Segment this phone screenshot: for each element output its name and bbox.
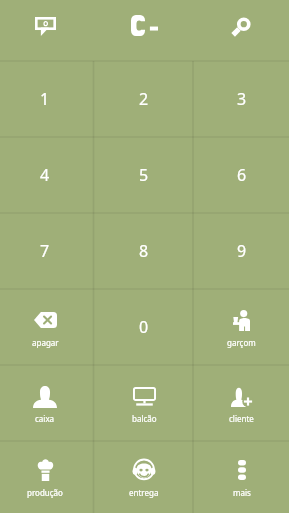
button[interactable]: apagar <box>0 289 94 365</box>
button[interactable]: 6 <box>194 137 289 213</box>
button[interactable]: 2 <box>94 61 194 137</box>
button[interactable]: produção <box>0 441 94 513</box>
button[interactable]: balcão <box>94 365 194 441</box>
staticText: apagar <box>32 337 59 348</box>
staticText: caixa <box>35 413 55 424</box>
staticText: 6 <box>237 164 247 186</box>
staticText: 2 <box>139 88 149 110</box>
button[interactable]: caixa <box>0 365 94 441</box>
button[interactable]: garçom <box>194 289 289 365</box>
staticText: 9 <box>237 240 247 262</box>
button[interactable]: Search <box>194 0 289 61</box>
staticText: entrega <box>129 487 159 498</box>
button[interactable]: 4 <box>0 137 94 213</box>
staticText: cliente <box>229 413 254 424</box>
staticText: 0 <box>139 316 149 338</box>
button[interactable]: 8 <box>94 213 194 289</box>
button[interactable]: Comments <box>0 0 94 61</box>
button[interactable]: 7 <box>0 213 94 289</box>
staticText: balcão <box>132 413 157 424</box>
button[interactable]: 0 <box>94 289 194 365</box>
staticText: mais <box>233 487 251 498</box>
button[interactable]: 5 <box>94 137 194 213</box>
button[interactable]: entrega <box>94 441 194 513</box>
staticText: garçom <box>227 337 256 348</box>
button[interactable]: mais <box>194 441 289 513</box>
staticText: 7 <box>40 240 50 262</box>
button[interactable] <box>94 0 194 61</box>
staticText: 3 <box>237 88 247 110</box>
staticText: 4 <box>40 164 50 186</box>
staticText: 1 <box>40 88 50 110</box>
staticText: produção <box>27 487 63 498</box>
staticText: 8 <box>139 240 149 262</box>
button[interactable]: cliente <box>194 365 289 441</box>
button[interactable]: 1 <box>0 61 94 137</box>
button[interactable]: 9 <box>194 213 289 289</box>
button[interactable]: 3 <box>194 61 289 137</box>
staticText: 5 <box>139 164 149 186</box>
